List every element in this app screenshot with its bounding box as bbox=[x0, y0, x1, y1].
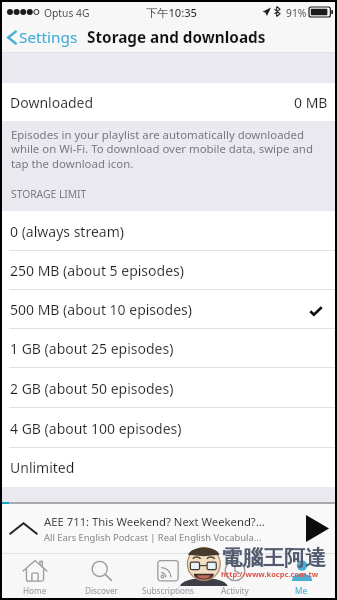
staticText: Home bbox=[23, 585, 47, 596]
button[interactable]: 1 GB (about 25 episodes) bbox=[2, 329, 335, 368]
staticText: 電腦王阿達 bbox=[221, 545, 326, 571]
staticText: 500 MB (about 10 episodes) bbox=[10, 300, 192, 319]
other: Expand player bbox=[2, 504, 44, 553]
staticText: Subscriptions bbox=[142, 585, 194, 596]
button[interactable]: 500 MB (about 10 episodes) bbox=[2, 290, 335, 329]
staticText: STORAGE LIMIT bbox=[11, 187, 87, 201]
button[interactable]: Me bbox=[268, 553, 335, 598]
staticText: 1 GB (about 25 episodes) bbox=[10, 339, 174, 358]
staticText: 0 (always stream) bbox=[10, 222, 124, 241]
staticText: 2 GB (about 50 episodes) bbox=[10, 379, 174, 398]
button[interactable]: Expand player bbox=[2, 504, 335, 553]
staticText: Episodes in your playlist are automatica… bbox=[11, 127, 314, 172]
staticText: 250 MB (about 5 episodes) bbox=[10, 261, 184, 280]
button[interactable]: 250 MB (about 5 episodes) bbox=[2, 251, 335, 290]
staticText: Me bbox=[295, 585, 308, 596]
staticText: Unlimited bbox=[10, 458, 75, 477]
other: Play bbox=[300, 504, 335, 553]
button[interactable]: Home bbox=[2, 553, 68, 598]
staticText: All Ears English Podcast | Real English … bbox=[44, 531, 262, 544]
staticText: Discover bbox=[85, 585, 118, 596]
button[interactable]: Unlimited bbox=[2, 448, 335, 487]
button[interactable]: Settings bbox=[2, 23, 81, 52]
staticText: 91% bbox=[286, 6, 307, 20]
button[interactable]: Subscriptions bbox=[134, 553, 201, 598]
staticText: 4G bbox=[76, 6, 90, 20]
staticText: Downloaded bbox=[10, 93, 94, 112]
button[interactable]: Downloaded bbox=[2, 83, 335, 121]
button[interactable]: 2 GB (about 50 episodes) bbox=[2, 368, 335, 408]
staticText: 4 GB (about 100 episodes) bbox=[10, 419, 182, 438]
button[interactable]: 0 (always stream) bbox=[2, 211, 335, 251]
staticText: 0 MB bbox=[294, 93, 328, 112]
staticText: Settings bbox=[19, 27, 78, 48]
staticText: 下午10:35 bbox=[146, 5, 198, 20]
button[interactable]: Activity bbox=[201, 553, 268, 598]
staticText: AEE 711: This Weekend? Next Weekend?... bbox=[44, 514, 265, 529]
button[interactable]: Discover bbox=[68, 553, 134, 598]
staticText: Storage and downloads bbox=[87, 27, 266, 48]
button[interactable]: 4 GB (about 100 episodes) bbox=[2, 408, 335, 448]
staticText: http://www.kocpc.com.tw bbox=[221, 569, 319, 579]
staticText: Optus bbox=[44, 6, 74, 20]
staticText: Activity bbox=[221, 585, 249, 596]
